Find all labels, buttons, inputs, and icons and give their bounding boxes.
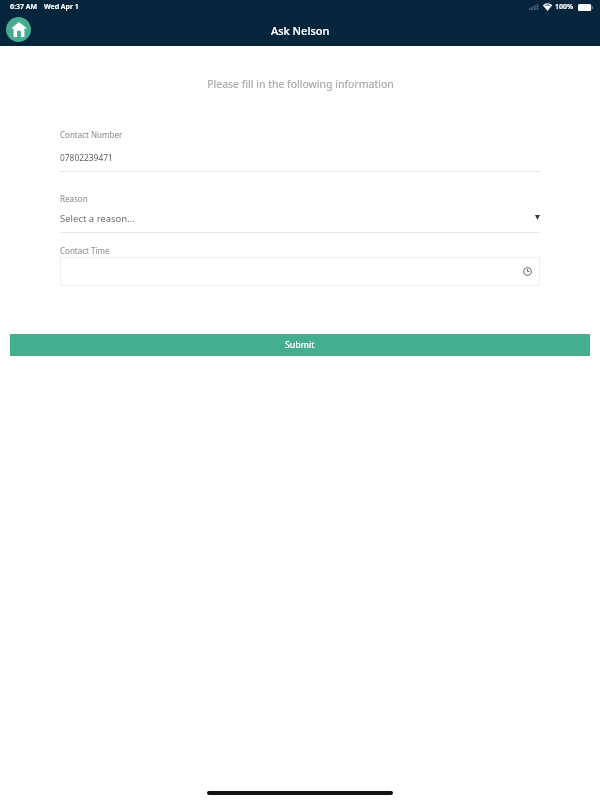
staticText: Select a reason... — [60, 212, 135, 225]
staticText: 6:37 AM — [10, 2, 37, 12]
other: Pick time — [523, 267, 532, 276]
button[interactable]: Contact Number — [60, 129, 540, 172]
staticText: Reason — [60, 193, 88, 204]
staticText: Contact Number — [60, 129, 123, 140]
staticText: 07802239471 — [60, 152, 113, 163]
staticText: Ask Nelson — [271, 23, 330, 38]
button[interactable]: Home — [6, 17, 31, 42]
staticText: Please fill in the following information — [207, 77, 394, 91]
staticText: Contact Time — [60, 245, 110, 256]
staticText: 100% — [555, 2, 574, 12]
staticText: Submit — [285, 339, 315, 351]
button[interactable]: Reason — [60, 193, 540, 233]
button[interactable]: Pick time — [60, 257, 540, 286]
staticText: Wed Apr 1 — [44, 2, 79, 12]
button[interactable]: Submit — [10, 334, 590, 356]
